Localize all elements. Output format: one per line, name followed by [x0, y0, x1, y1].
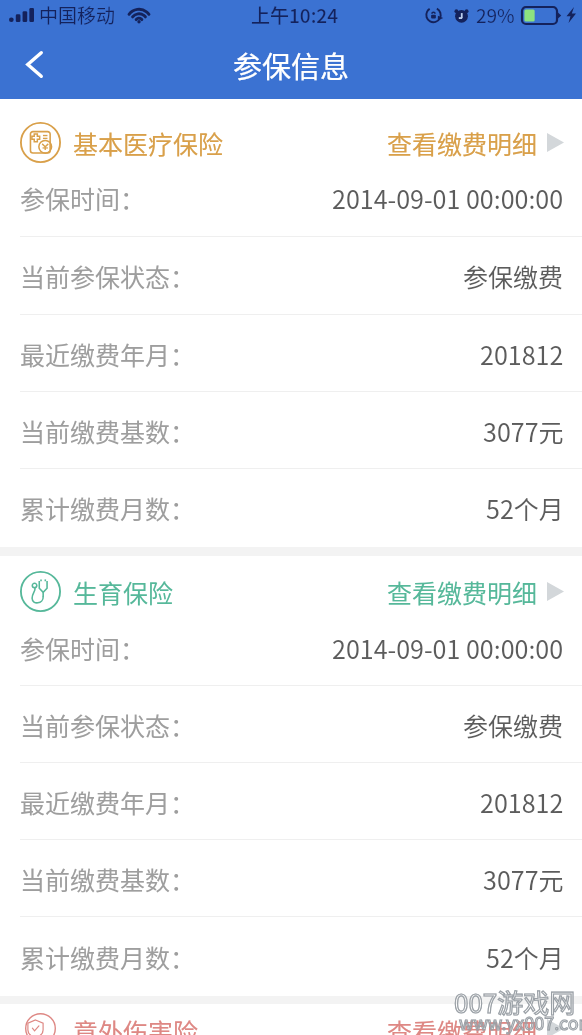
staticText: 007游戏网	[454, 983, 576, 1021]
staticText: 当前参保状态：	[20, 258, 196, 294]
staticText: 生育保险	[73, 574, 174, 610]
staticText: 基本医疗保险	[73, 125, 224, 161]
staticText: www.yx007.com	[459, 1009, 582, 1035]
staticText: 查看缴费明细	[387, 574, 538, 610]
staticText: 201812	[480, 336, 564, 372]
staticText: 2014-09-01 00:00:00	[332, 630, 564, 666]
staticText: 查看缴费明细	[387, 125, 538, 161]
staticText: 当前缴费基数：	[20, 413, 196, 449]
staticText: 最近缴费年月：	[20, 336, 196, 372]
button[interactable]: 意外伤害险	[0, 1004, 582, 1035]
staticText: 2014-09-01 00:00:00	[332, 180, 564, 216]
button[interactable]: 基本医疗保险	[0, 99, 582, 159]
staticText: 参保信息	[233, 44, 350, 86]
staticText: 参保缴费	[463, 707, 564, 743]
staticText: 参保时间：	[20, 630, 146, 666]
staticText: 上午10:24	[251, 1, 338, 29]
staticText: 累计缴费月数：	[20, 939, 196, 975]
staticText: 参保缴费	[463, 258, 564, 294]
staticText: 最近缴费年月：	[20, 784, 196, 820]
button[interactable]: 生育保险	[0, 556, 582, 609]
staticText: 52个月	[486, 490, 564, 526]
staticText: 52个月	[486, 939, 564, 975]
staticText: 查看缴费明细	[387, 1013, 538, 1035]
staticText: 3077元	[483, 413, 564, 449]
staticText: 意外伤害险	[73, 1013, 199, 1035]
staticText: 201812	[480, 784, 564, 820]
staticText: 当前参保状态：	[20, 707, 196, 743]
staticText: 3077元	[483, 861, 564, 897]
staticText: 当前缴费基数：	[20, 861, 196, 897]
staticText: 累计缴费月数：	[20, 490, 196, 526]
button[interactable]: Back	[0, 30, 62, 99]
staticText: 参保时间：	[20, 180, 146, 216]
staticText: 29%	[476, 1, 515, 29]
staticText: 中国移动	[39, 1, 116, 29]
